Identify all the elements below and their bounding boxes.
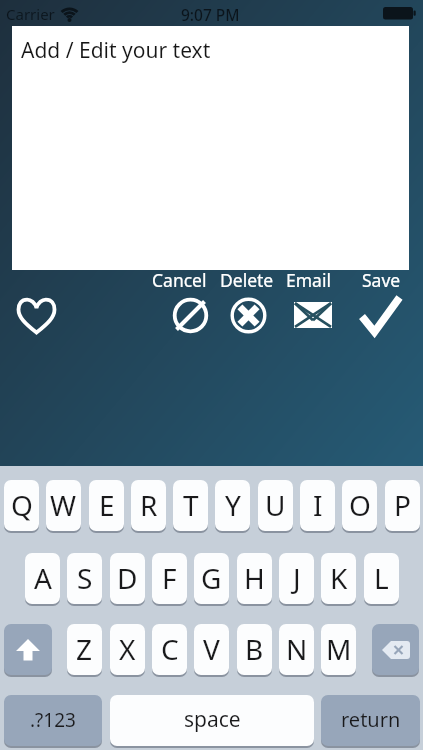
button[interactable]: X	[110, 624, 145, 677]
staticText: K	[330, 559, 348, 597]
staticText: N	[286, 630, 308, 668]
button[interactable]: G	[194, 553, 229, 606]
staticText: E	[99, 486, 115, 524]
staticText: M	[326, 630, 352, 668]
button[interactable]: D	[110, 553, 145, 606]
button[interactable]	[359, 293, 403, 338]
button[interactable]: B	[237, 624, 272, 677]
button[interactable]: O	[342, 480, 377, 533]
staticText: I	[313, 486, 323, 524]
button[interactable]	[294, 302, 332, 328]
staticText: R	[140, 486, 158, 524]
staticText: J	[293, 559, 301, 597]
staticText: 9:07 PM	[181, 4, 240, 25]
button[interactable]: A	[25, 553, 60, 606]
staticText: W	[50, 486, 77, 524]
button[interactable]	[372, 624, 419, 677]
button[interactable]: W	[46, 480, 81, 533]
button[interactable]: P	[385, 480, 420, 533]
button[interactable]: Add / Edit your text	[12, 26, 409, 270]
staticText: Z	[76, 630, 93, 668]
staticText: L	[374, 559, 389, 597]
button[interactable]: F	[152, 553, 187, 606]
button[interactable]	[16, 297, 57, 338]
staticText: Delete	[220, 268, 274, 292]
button[interactable]: E	[89, 480, 124, 533]
staticText: A	[34, 559, 52, 597]
button[interactable]: space	[110, 695, 314, 748]
staticText: D	[117, 559, 138, 597]
button[interactable]: .?123	[4, 695, 102, 748]
button[interactable]: C	[152, 624, 187, 677]
staticText: Q	[11, 486, 33, 524]
staticText: space	[184, 705, 241, 734]
button[interactable]: Y	[215, 480, 250, 533]
button[interactable]: I	[300, 480, 335, 533]
staticText: P	[394, 486, 411, 524]
button[interactable]: H	[237, 553, 272, 606]
button[interactable]: J	[279, 553, 314, 606]
staticText: O	[349, 486, 371, 524]
staticText: Y	[225, 486, 241, 524]
button[interactable]	[229, 296, 268, 335]
staticText: S	[77, 559, 93, 597]
staticText: U	[265, 486, 286, 524]
staticText: G	[201, 559, 222, 597]
button[interactable]: M	[321, 624, 356, 677]
button[interactable]: T	[173, 480, 208, 533]
staticText: Add / Edit your text	[21, 36, 211, 65]
staticText: F	[162, 559, 177, 597]
button[interactable]: return	[321, 695, 420, 748]
button[interactable]: U	[258, 480, 293, 533]
button[interactable]: N	[279, 624, 314, 677]
button[interactable]: V	[194, 624, 229, 677]
staticText: return	[341, 706, 401, 733]
button[interactable]: L	[364, 553, 399, 606]
staticText: Cancel	[152, 268, 207, 292]
staticText: X	[119, 630, 136, 668]
staticText: V	[203, 630, 220, 668]
staticText: H	[244, 559, 265, 597]
staticText: Email	[286, 268, 331, 292]
staticText: .?123	[30, 707, 76, 733]
button[interactable]: Q	[4, 480, 39, 533]
button[interactable]	[171, 296, 210, 335]
staticText: C	[161, 630, 179, 668]
button[interactable]: S	[67, 553, 102, 606]
button[interactable]: R	[131, 480, 166, 533]
button[interactable]: Z	[67, 624, 102, 677]
button[interactable]: K	[321, 553, 356, 606]
staticText: B	[245, 630, 264, 668]
staticText: Carrier	[6, 4, 55, 24]
staticText: Save	[362, 268, 401, 292]
staticText: T	[183, 486, 199, 524]
button[interactable]	[4, 624, 52, 677]
